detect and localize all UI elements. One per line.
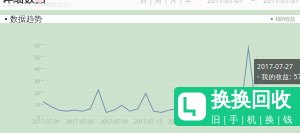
staticText: 10 bbox=[34, 101, 40, 109]
staticText: 50 bbox=[34, 54, 40, 61]
staticText: 2017-07-13 bbox=[134, 118, 162, 125]
staticText: 2017-07-17 bbox=[168, 118, 196, 125]
button[interactable]: 2017-07-01 ~ 2017-07-31 bbox=[205, 0, 300, 5]
staticText: 2017-07-01 bbox=[32, 118, 60, 125]
staticText: 详细数据 bbox=[2, 0, 46, 5]
staticText: 2017-07-05 bbox=[66, 118, 94, 125]
staticText: 20 bbox=[34, 90, 40, 97]
staticText: 旧 | 手 | 机 | 换 | 钱 bbox=[211, 113, 292, 125]
staticText: 2017-07-01 ~ 2017-07-31 bbox=[207, 0, 299, 5]
staticText: 换换回收 bbox=[211, 87, 291, 112]
staticText: 40 bbox=[34, 66, 40, 73]
staticText: 2017-07-09 bbox=[100, 118, 128, 125]
staticText: 这是您本月的收益明细数据统计 bbox=[2, 1, 72, 8]
staticText: 30 bbox=[34, 78, 40, 85]
staticText: 数据趋势 bbox=[10, 14, 42, 24]
staticText: 日 | 周 | 月 | 年 bbox=[140, 0, 192, 5]
button[interactable]: 日 | 周 | 月 | 年 bbox=[138, 0, 194, 5]
staticText: 60 bbox=[34, 42, 40, 49]
staticText: 我的收益 bbox=[275, 16, 295, 22]
staticText: 2017-07-27 bbox=[257, 62, 293, 71]
staticText: 0 bbox=[37, 113, 40, 120]
staticText: 我的收益: 57.4 bbox=[261, 72, 300, 81]
